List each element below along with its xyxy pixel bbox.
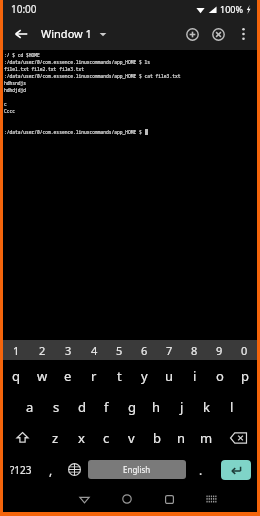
staticText: l <box>230 398 234 416</box>
button[interactable]: More options <box>231 22 255 46</box>
staticText: 10:00 <box>11 2 37 16</box>
button[interactable]: s <box>43 391 69 422</box>
staticText: . <box>199 462 203 478</box>
staticText: t <box>117 367 122 385</box>
button[interactable]: y <box>132 360 157 391</box>
staticText: English <box>123 464 151 475</box>
button[interactable]: . <box>187 453 214 486</box>
button[interactable]: f <box>94 391 119 422</box>
button[interactable]: 3 <box>55 340 81 360</box>
staticText: 0 <box>241 343 248 358</box>
button[interactable]: Window 1 <box>41 26 107 41</box>
button[interactable]: Home <box>106 486 148 512</box>
button[interactable]: Hide keyboard <box>190 486 232 512</box>
staticText: 7 <box>166 343 173 358</box>
staticText: k <box>203 398 210 416</box>
button[interactable]: a <box>17 391 43 422</box>
staticText: 8 <box>191 343 198 358</box>
staticText: 100% <box>220 3 243 15</box>
button[interactable]: , <box>39 453 62 486</box>
staticText: s <box>53 398 60 416</box>
staticText: 9 <box>216 343 223 358</box>
staticText: n <box>177 429 186 447</box>
button[interactable]: 4 <box>81 340 107 360</box>
button[interactable]: Enter <box>214 453 257 486</box>
staticText: 3 <box>65 343 72 358</box>
button[interactable]: Change language <box>62 453 87 486</box>
button[interactable]: u <box>157 360 182 391</box>
button[interactable]: d <box>69 391 94 422</box>
staticText: o <box>216 367 224 385</box>
button[interactable]: l <box>219 391 244 422</box>
staticText: m <box>200 429 213 447</box>
staticText: ?123 <box>10 463 32 477</box>
button[interactable]: 5 <box>107 340 132 360</box>
staticText: w <box>37 367 48 385</box>
button[interactable]: New window <box>179 21 205 47</box>
button[interactable]: m <box>194 422 219 453</box>
staticText: i <box>193 367 197 385</box>
staticText: x <box>78 429 85 447</box>
staticText: file1.txt file2.txt file3.txt <box>4 66 84 72</box>
button[interactable]: h <box>144 391 169 422</box>
staticText: e <box>64 367 72 385</box>
staticText: u <box>165 367 174 385</box>
button[interactable]: Shift <box>3 422 42 453</box>
staticText: 4 <box>91 343 98 358</box>
button[interactable]: 1 <box>3 340 29 360</box>
button[interactable]: p <box>232 360 257 391</box>
button[interactable]: Recent apps <box>148 486 190 512</box>
button[interactable]: ?123 <box>3 453 39 486</box>
button[interactable]: 9 <box>207 340 232 360</box>
button[interactable]: :/ $ cd $HOME <box>3 50 257 340</box>
button[interactable]: Close window <box>205 21 231 47</box>
staticText: :/data/user/0/com.essence.linuxcommands/… <box>4 129 145 135</box>
button[interactable]: Back <box>7 20 35 48</box>
staticText: hdhdjdjd <box>4 87 27 93</box>
staticText: y <box>141 367 148 385</box>
button[interactable]: i <box>182 360 207 391</box>
button[interactable]: 0 <box>232 340 257 360</box>
button[interactable]: k <box>194 391 219 422</box>
staticText: c <box>103 429 110 447</box>
button[interactable]: Back <box>63 486 106 512</box>
staticText: Window 1 <box>41 26 92 41</box>
button[interactable]: t <box>107 360 132 391</box>
staticText: Cccc <box>4 108 16 114</box>
button[interactable]: g <box>119 391 144 422</box>
button[interactable]: English <box>88 460 186 479</box>
staticText: b <box>153 429 161 447</box>
button[interactable]: j <box>169 391 194 422</box>
staticText: z <box>52 429 59 447</box>
button[interactable]: 2 <box>29 340 55 360</box>
button[interactable]: z <box>42 422 68 453</box>
button[interactable]: e <box>55 360 81 391</box>
button[interactable]: Backspace <box>219 422 257 453</box>
button[interactable]: 8 <box>182 340 207 360</box>
button[interactable]: 7 <box>157 340 182 360</box>
button[interactable]: q <box>3 360 29 391</box>
staticText: 1 <box>13 343 20 358</box>
staticText: hdhsndjs <box>4 80 27 86</box>
button[interactable]: x <box>68 422 94 453</box>
button[interactable]: n <box>169 422 194 453</box>
staticText: r <box>91 367 97 385</box>
button[interactable]: o <box>207 360 232 391</box>
staticText: 2 <box>39 343 46 358</box>
staticText: , <box>49 462 53 478</box>
staticText: d <box>78 398 86 416</box>
staticText: v <box>128 429 135 447</box>
button[interactable]: 6 <box>132 340 157 360</box>
staticText: j <box>180 398 184 416</box>
staticText: q <box>12 367 20 385</box>
button[interactable]: b <box>144 422 169 453</box>
button[interactable]: c <box>94 422 119 453</box>
staticText: :/data/user/0/com.essence.linuxcommands/… <box>4 59 151 65</box>
staticText: :/data/user/0/com.essence.linuxcommands/… <box>4 73 181 79</box>
button[interactable]: w <box>29 360 55 391</box>
staticText: :/ $ cd $HOME <box>4 52 40 58</box>
staticText: p <box>241 367 249 385</box>
button[interactable]: r <box>81 360 107 391</box>
staticText: h <box>152 398 161 416</box>
button[interactable]: v <box>119 422 144 453</box>
